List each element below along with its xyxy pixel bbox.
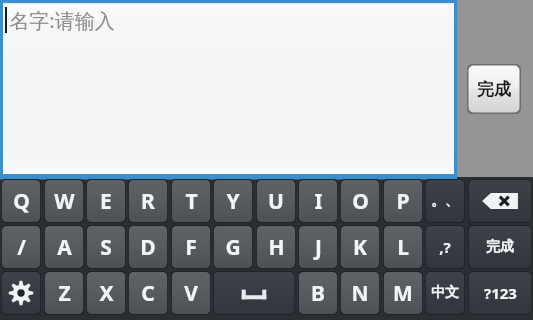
staticText: S (100, 233, 112, 262)
staticText: 完成 (486, 238, 514, 256)
staticText: ?123 (484, 283, 517, 303)
staticText: Y (226, 187, 240, 216)
button[interactable]: R (128, 179, 168, 223)
staticText: P (396, 187, 410, 216)
button[interactable]: N (340, 271, 380, 315)
button[interactable]: D (128, 225, 168, 269)
staticText: F (185, 233, 197, 262)
staticText: O (352, 187, 369, 216)
staticText: A (57, 233, 72, 262)
staticText: W (54, 187, 75, 216)
button[interactable]: X (86, 271, 126, 315)
button[interactable]: C (128, 271, 168, 315)
staticText: R (141, 187, 155, 216)
button[interactable]: L (383, 225, 423, 269)
button[interactable]: P (383, 179, 423, 223)
staticText: U (268, 187, 284, 216)
staticText: T (185, 187, 198, 216)
staticText: J (315, 233, 322, 262)
button[interactable]: Space (213, 271, 295, 315)
staticText: G (225, 233, 241, 262)
button[interactable]: Q (1, 179, 41, 223)
staticText: 完成 (477, 79, 511, 100)
button[interactable]: Z (44, 271, 84, 315)
button[interactable]: Backspace (468, 179, 532, 223)
button[interactable]: W (44, 179, 84, 223)
button[interactable]: O (340, 179, 380, 223)
button[interactable]: H (256, 225, 296, 269)
button[interactable]: 完成 (467, 64, 521, 114)
staticText: Q (13, 187, 30, 216)
staticText: N (351, 279, 369, 308)
button[interactable]: J (298, 225, 338, 269)
button[interactable]: S (86, 225, 126, 269)
staticText: X (99, 279, 114, 308)
button[interactable]: 完成 (468, 225, 532, 269)
staticText: K (353, 233, 367, 262)
button[interactable]: F (171, 225, 211, 269)
staticText: E (100, 187, 112, 216)
button[interactable]: I (298, 179, 338, 223)
staticText: ,? (439, 237, 451, 257)
staticText: M (393, 279, 413, 308)
staticText: L (397, 233, 409, 262)
staticText: H (268, 233, 285, 262)
button[interactable]: E (86, 179, 126, 223)
button[interactable]: ,? (425, 225, 465, 269)
button[interactable]: V (171, 271, 211, 315)
staticText: / (17, 233, 26, 262)
staticText: C (141, 279, 155, 308)
staticText: Z (58, 279, 71, 308)
button[interactable]: A (44, 225, 84, 269)
button[interactable]: M (383, 271, 423, 315)
staticText: I (314, 187, 323, 216)
button[interactable]: T (171, 179, 211, 223)
button[interactable]: 中文 (425, 271, 465, 315)
staticText: D (140, 233, 156, 262)
button[interactable]: G (213, 225, 253, 269)
staticText: B (311, 279, 325, 308)
staticText: V (184, 279, 198, 308)
button[interactable]: K (340, 225, 380, 269)
button[interactable]: U (256, 179, 296, 223)
button[interactable]: Keyboard settings (1, 271, 41, 315)
button[interactable]: Y (213, 179, 253, 223)
staticText: 。、 (431, 192, 459, 210)
button[interactable]: 。、 (425, 179, 465, 223)
button[interactable]: B (298, 271, 338, 315)
button[interactable]: 名字:请输入 (0, 0, 457, 177)
button[interactable]: / (1, 225, 41, 269)
staticText: 名字:请输入 (9, 7, 115, 34)
staticText: 中文 (431, 284, 459, 302)
button[interactable]: ?123 (468, 271, 532, 315)
